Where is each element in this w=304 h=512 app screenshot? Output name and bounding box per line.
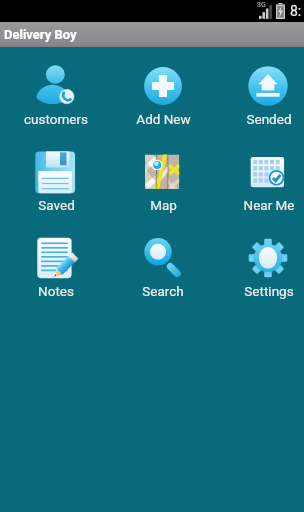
button[interactable]: Settings — [223, 229, 304, 315]
button[interactable]: Saved — [10, 143, 102, 229]
staticText: customers — [24, 111, 88, 127]
staticText: Near Me — [243, 197, 295, 213]
staticText: Add New — [136, 111, 191, 127]
button[interactable]: Search — [117, 229, 209, 315]
staticText: 3G — [257, 1, 266, 9]
button[interactable]: customers — [10, 57, 102, 143]
staticText: Delivery Boy — [4, 27, 77, 42]
button[interactable]: Sended — [223, 57, 304, 143]
staticText: Settings — [244, 283, 294, 299]
staticText: Map — [150, 197, 177, 213]
button[interactable]: Near Me — [223, 143, 304, 229]
staticText: 8: — [290, 3, 302, 19]
staticText: Search — [142, 283, 184, 299]
button[interactable]: Add New — [117, 57, 209, 143]
staticText: Saved — [38, 197, 75, 213]
staticText: Notes — [38, 283, 74, 299]
button[interactable]: Notes — [10, 229, 102, 315]
staticText: Sended — [246, 111, 292, 127]
button[interactable]: Map — [117, 143, 209, 229]
